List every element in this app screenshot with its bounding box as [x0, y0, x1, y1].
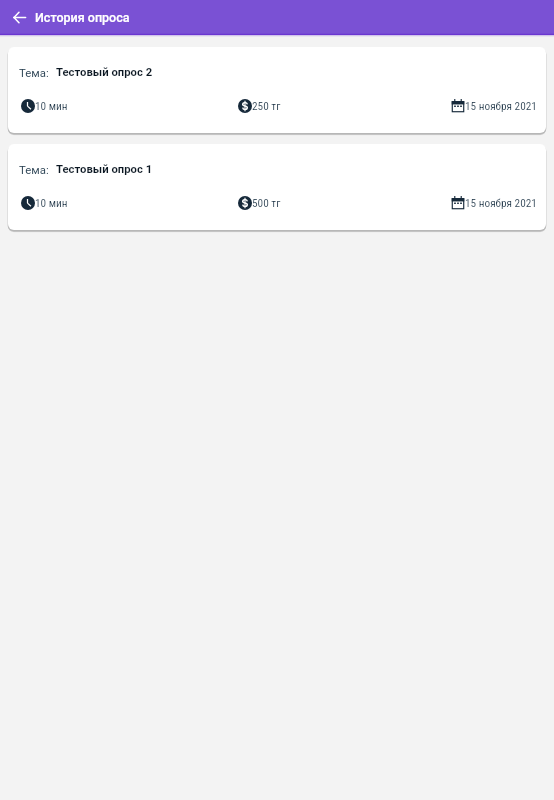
staticText: 500 тг [252, 197, 281, 210]
staticText: История опроса [35, 10, 130, 25]
staticText: Тема: [19, 66, 49, 79]
staticText: Тема: [19, 163, 49, 176]
staticText: 15 ноября 2021 [465, 100, 537, 113]
button[interactable]: Тема: [8, 144, 546, 230]
staticText: 10 мин [35, 197, 68, 210]
button[interactable]: Тема: [8, 47, 546, 133]
staticText: 15 ноября 2021 [465, 197, 537, 210]
button[interactable]: Back [7, 5, 32, 30]
staticText: Тестовый опрос 2 [56, 66, 153, 79]
staticText: Тестовый опрос 1 [56, 163, 153, 176]
staticText: 10 мин [35, 100, 68, 113]
staticText: 250 тг [252, 100, 281, 113]
